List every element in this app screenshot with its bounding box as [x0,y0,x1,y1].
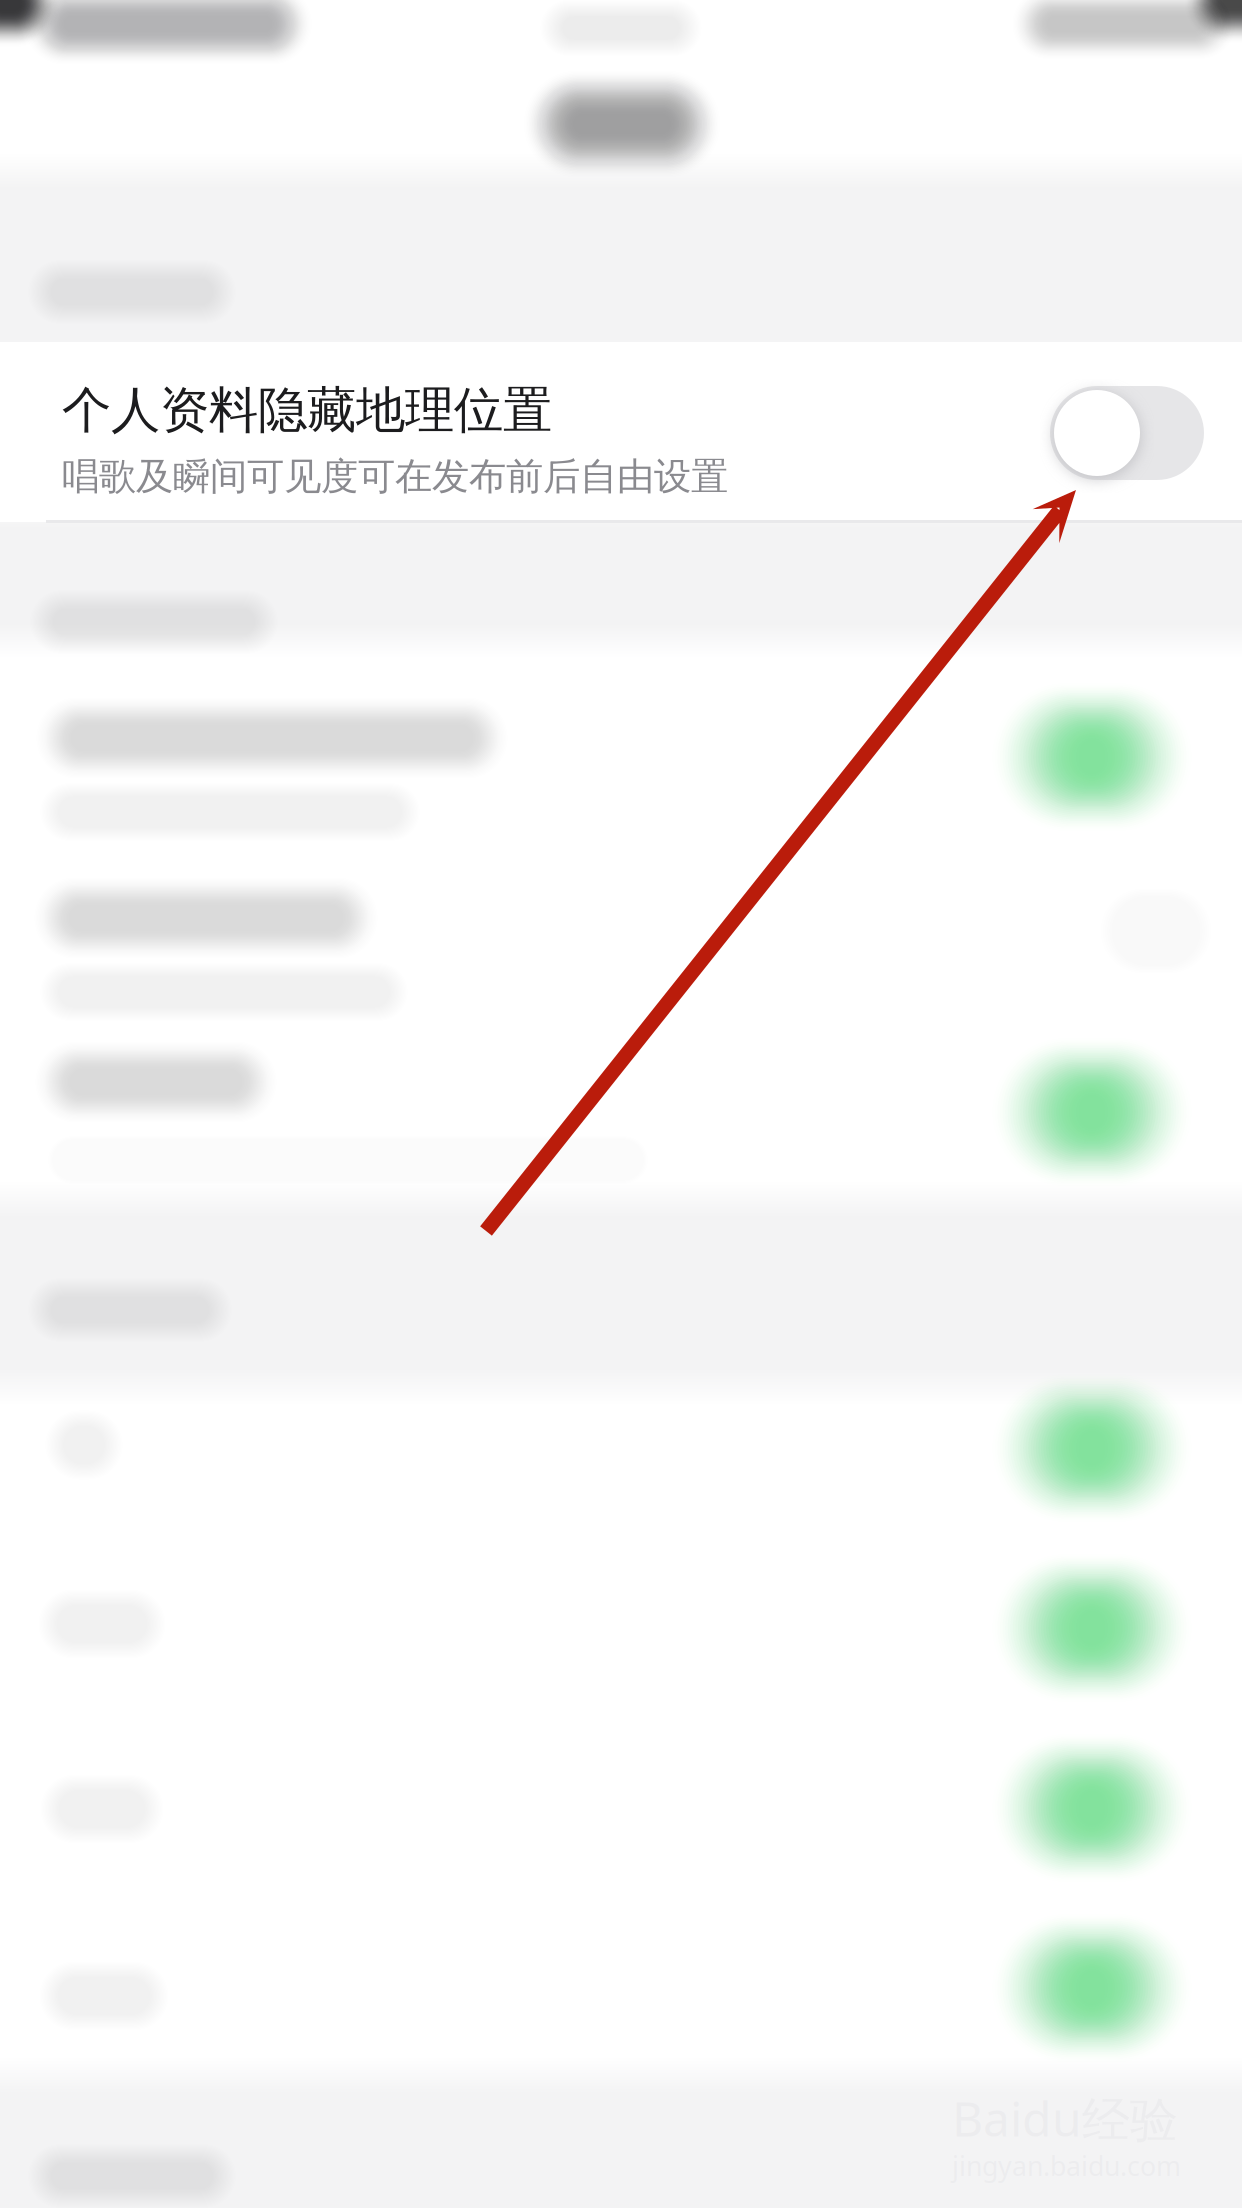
staticText: 唱歌及瞬间可见度可在发布前后自由设置 [62,454,728,499]
button[interactable]: 个人资料隐藏地理位置 [0,342,1242,522]
staticText: 个人资料隐藏地理位置 [62,380,552,441]
